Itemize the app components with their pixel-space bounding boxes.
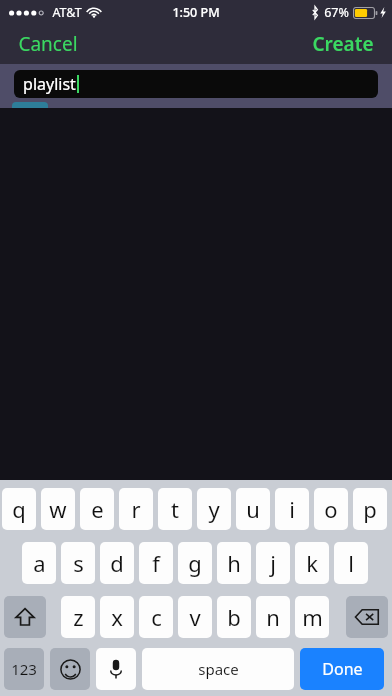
staticText: n xyxy=(266,602,280,632)
staticText: u xyxy=(246,494,260,524)
button[interactable]: playlist xyxy=(14,70,378,98)
button[interactable]: u xyxy=(236,488,270,530)
button[interactable]: t xyxy=(158,488,192,530)
button[interactable]: q xyxy=(2,488,36,530)
staticText: d xyxy=(110,548,124,578)
staticText: w xyxy=(49,494,67,524)
button[interactable]: y xyxy=(197,488,231,530)
staticText: a xyxy=(33,548,46,578)
button[interactable]: space xyxy=(142,648,294,690)
staticText: i xyxy=(289,494,295,524)
button[interactable]: b xyxy=(217,596,251,638)
staticText: q xyxy=(12,494,26,524)
staticText: Done xyxy=(322,658,363,680)
button[interactable]: o xyxy=(314,488,348,530)
staticText: 67% xyxy=(324,4,349,21)
staticText: Cancel xyxy=(18,31,78,57)
button[interactable]: Done xyxy=(300,648,384,690)
staticText: k xyxy=(306,548,318,578)
button[interactable]: d xyxy=(100,542,134,584)
staticText: f xyxy=(152,548,160,578)
staticText: p xyxy=(363,494,377,524)
button[interactable]: x xyxy=(100,596,134,638)
button[interactable]: k xyxy=(295,542,329,584)
button[interactable]: j xyxy=(256,542,290,584)
button[interactable]: r xyxy=(119,488,153,530)
button[interactable]: w xyxy=(41,488,75,530)
staticText: x xyxy=(111,602,123,632)
button[interactable]: i xyxy=(275,488,309,530)
button[interactable]: z xyxy=(61,596,95,638)
staticText: r xyxy=(131,494,141,524)
button[interactable]: h xyxy=(217,542,251,584)
button[interactable]: c xyxy=(139,596,173,638)
button[interactable]: 123 xyxy=(4,648,44,690)
button[interactable]: Cancel xyxy=(0,25,96,63)
staticText: b xyxy=(227,602,241,632)
button[interactable]: f xyxy=(139,542,173,584)
staticText: v xyxy=(189,602,201,632)
staticText: e xyxy=(91,494,104,524)
button[interactable]: g xyxy=(178,542,212,584)
staticText: s xyxy=(73,548,84,578)
staticText: space xyxy=(198,659,239,679)
staticText: playlist xyxy=(23,73,76,95)
staticText: l xyxy=(348,548,354,578)
staticText: AT&T xyxy=(52,4,82,21)
staticText: z xyxy=(73,602,84,632)
button[interactable]: Create xyxy=(294,25,392,63)
staticText: Create xyxy=(312,31,374,57)
button[interactable]: l xyxy=(334,542,368,584)
button[interactable]: v xyxy=(178,596,212,638)
staticText: h xyxy=(227,548,241,578)
staticText: t xyxy=(171,494,179,524)
staticText: 1:50 PM xyxy=(172,4,220,21)
button[interactable]: Shift xyxy=(4,596,46,638)
staticText: m xyxy=(302,602,323,632)
staticText: g xyxy=(188,548,202,578)
staticText: o xyxy=(324,494,338,524)
staticText: j xyxy=(270,548,276,578)
button[interactable]: n xyxy=(256,596,290,638)
button[interactable]: p xyxy=(353,488,387,530)
staticText: c xyxy=(151,602,162,632)
button[interactable]: e xyxy=(80,488,114,530)
button[interactable]: Dictation xyxy=(96,648,136,690)
button[interactable]: Backspace xyxy=(346,596,388,638)
button[interactable]: Emoji xyxy=(50,648,90,690)
button[interactable]: m xyxy=(295,596,329,638)
staticText: 123 xyxy=(11,659,37,679)
button[interactable]: s xyxy=(61,542,95,584)
staticText: y xyxy=(208,494,220,524)
button[interactable]: a xyxy=(22,542,56,584)
